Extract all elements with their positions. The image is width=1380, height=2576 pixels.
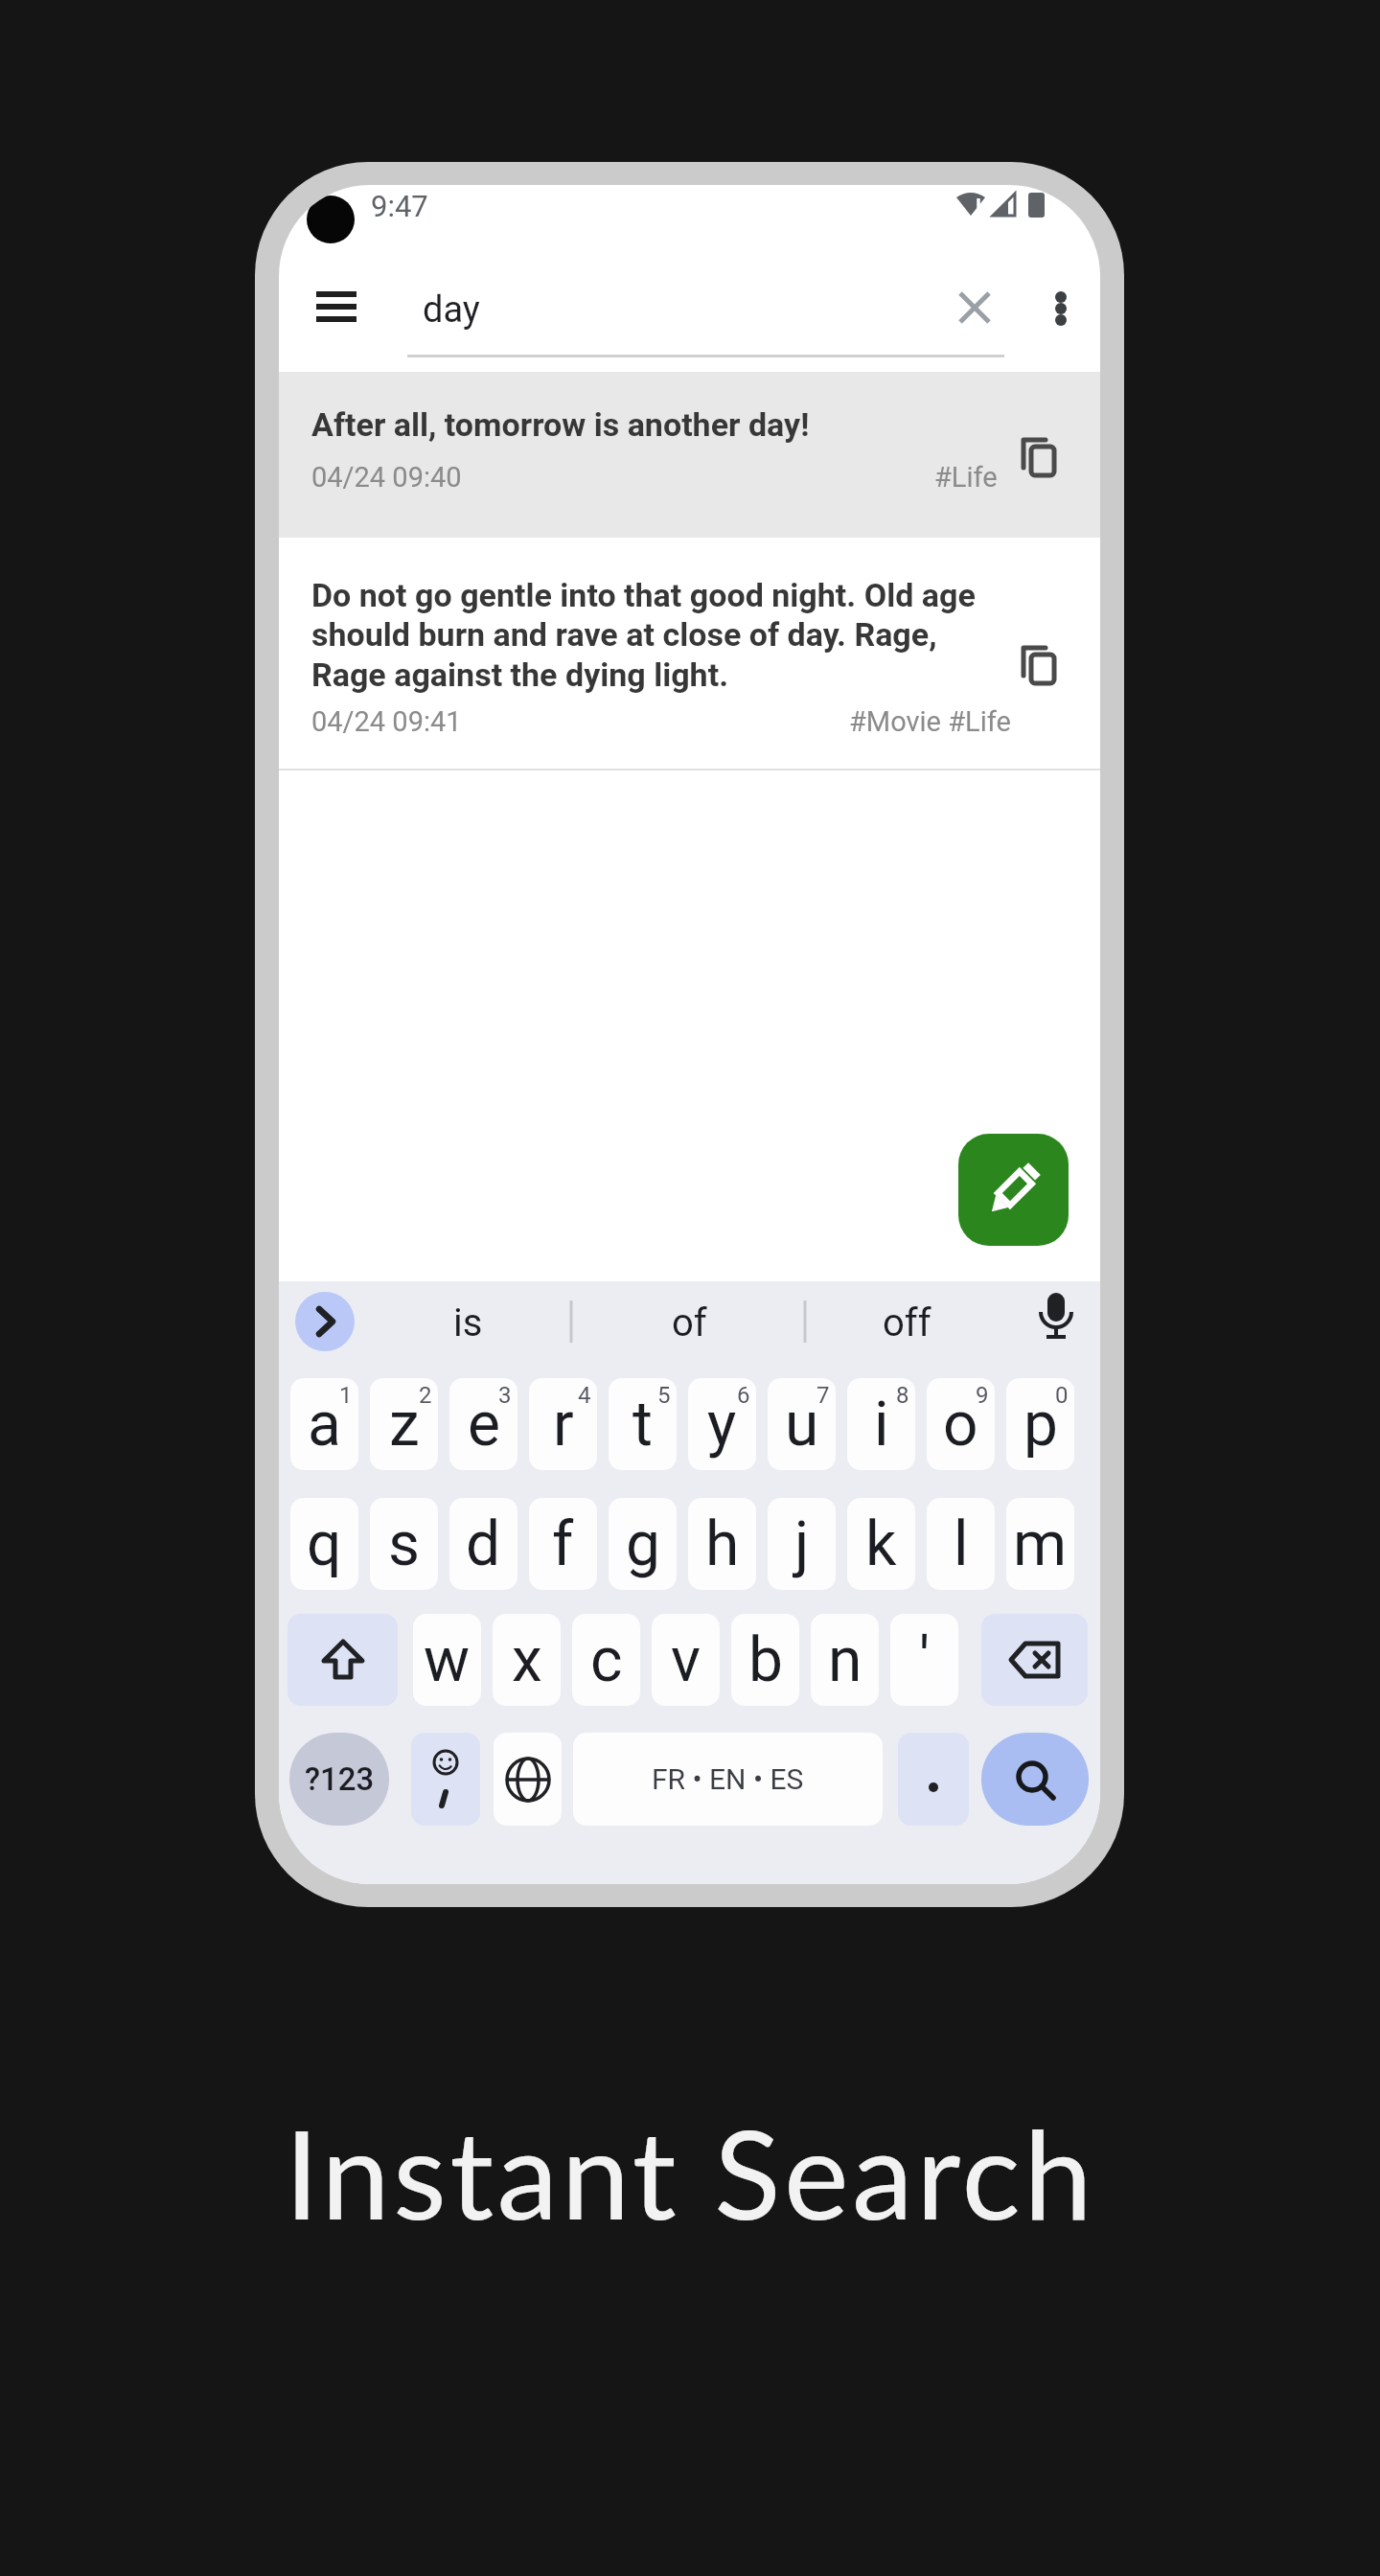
staticText: 6 [737,1382,750,1409]
staticText: Instant Search [0,2099,1380,2246]
button[interactable]: m [1006,1498,1074,1590]
staticText: c [590,1624,623,1696]
staticText: v [671,1624,701,1696]
staticText: 5 [657,1382,671,1409]
staticText: m [1013,1508,1068,1580]
button[interactable]: n [811,1614,879,1706]
staticText: j [794,1508,810,1580]
button[interactable]: v [652,1614,720,1706]
button[interactable]: ' [890,1614,958,1706]
staticText: o [943,1389,978,1460]
staticText: y [707,1389,737,1460]
staticText: 1 [339,1382,353,1409]
button[interactable]: l [927,1498,995,1590]
button[interactable]: of [632,1292,747,1353]
staticText: 2 [419,1382,432,1409]
button[interactable] [688,1378,756,1470]
button[interactable] [1037,284,1085,332]
staticText: z [389,1389,420,1460]
button[interactable] [494,1733,562,1826]
button[interactable] [287,1614,398,1706]
button[interactable] [898,1733,969,1826]
button[interactable]: FR • EN • ES [573,1733,883,1826]
staticText: r [553,1389,574,1460]
button[interactable]: w [413,1614,481,1706]
staticText: day [423,288,480,332]
button[interactable] [1006,1378,1074,1470]
staticText: p [1023,1389,1058,1460]
button[interactable]: ?123 [289,1733,389,1826]
button[interactable]: k [847,1498,915,1590]
staticText: After all, tomorrow is another day! [311,405,810,444]
staticText: l [954,1508,969,1580]
staticText: #Movie #Life [849,705,1011,738]
staticText: t [632,1389,653,1460]
button[interactable]: off [849,1292,964,1353]
button[interactable]: b [731,1614,799,1706]
button[interactable]: After all, tomorrow is another day! [279,372,1100,538]
staticText: 04/24 09:40 [311,461,462,494]
staticText: Do not go gentle into that good night. O… [311,576,976,614]
button[interactable] [981,1733,1089,1826]
button[interactable] [847,1378,915,1470]
staticText: s [388,1508,421,1580]
button[interactable] [290,1378,358,1470]
staticText: 04/24 09:41 [311,705,462,738]
staticText: of [672,1300,707,1345]
button[interactable] [609,1378,677,1470]
button[interactable]: s [370,1498,438,1590]
button[interactable]: Do not go gentle into that good night. O… [279,538,1100,770]
staticText: 8 [896,1382,909,1409]
staticText: 7 [816,1382,830,1409]
staticText: Rage against the dying light. [311,655,729,694]
staticText: 0 [1055,1382,1069,1409]
button[interactable]: j [768,1498,836,1590]
staticText: i [874,1389,889,1460]
staticText: is [453,1300,483,1345]
staticText: f [552,1508,574,1580]
staticText: 3 [498,1382,512,1409]
button[interactable] [1017,643,1065,689]
staticText: 4 [578,1382,591,1409]
staticText: n [828,1624,862,1696]
button[interactable]: q [290,1498,358,1590]
staticText: g [626,1508,660,1580]
button[interactable] [411,1733,480,1826]
button[interactable]: is [410,1292,525,1353]
staticText: ' [919,1624,931,1696]
staticText: b [748,1624,783,1696]
button[interactable] [927,1378,995,1470]
button[interactable] [295,1292,355,1351]
button[interactable]: f [529,1498,597,1590]
button[interactable] [449,1378,517,1470]
button[interactable] [308,285,365,333]
button[interactable]: x [493,1614,561,1706]
button[interactable] [768,1378,836,1470]
button[interactable]: h [688,1498,756,1590]
staticText: 9 [976,1382,989,1409]
staticText: ?123 [305,1760,375,1798]
button[interactable] [981,1614,1088,1706]
staticText: k [865,1508,897,1580]
staticText: 9:47 [371,189,428,223]
button[interactable]: c [572,1614,640,1706]
staticText: q [307,1508,342,1580]
button[interactable] [529,1378,597,1470]
staticText: a [308,1389,341,1460]
button[interactable] [370,1378,438,1470]
button[interactable] [951,284,999,332]
staticText: w [424,1624,471,1696]
staticText: should burn and rave at close of day. Ra… [311,615,937,654]
staticText: x [512,1624,542,1696]
staticText: d [466,1508,501,1580]
button[interactable] [958,1134,1069,1246]
button[interactable]: g [609,1498,677,1590]
staticText: e [468,1389,500,1460]
staticText: u [785,1389,819,1460]
button[interactable]: d [449,1498,517,1590]
button[interactable] [1017,435,1065,481]
staticText: #Life [934,461,998,494]
staticText: h [705,1508,740,1580]
staticText: FR • EN • ES [652,1762,804,1796]
staticText: off [883,1300,931,1345]
